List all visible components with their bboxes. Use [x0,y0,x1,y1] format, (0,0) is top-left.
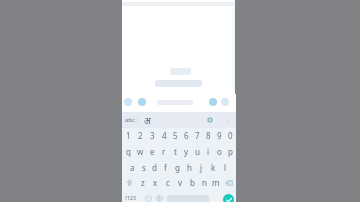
staticText: t [174,146,177,157]
staticText: c [166,177,170,188]
button[interactable]: o [214,143,225,159]
staticText: h [187,162,192,173]
button[interactable]: ?123 [125,195,136,202]
button[interactable]: u [192,143,203,159]
staticText: q [126,146,131,157]
staticText: a [130,162,135,173]
staticText: 3 [150,130,155,141]
staticText: p [228,146,233,157]
button[interactable]: i [203,143,214,159]
button[interactable]: 1 [122,128,134,143]
button[interactable]: Camera [138,98,146,106]
button[interactable]: 4 [158,128,170,143]
staticText: y [184,146,189,157]
staticText: 0 [228,130,233,141]
button[interactable]: j [195,159,207,175]
staticText: n [202,177,207,188]
button[interactable]: a [127,159,138,175]
staticText: l [224,162,227,173]
button[interactable]: Settings [206,116,214,124]
button[interactable]: Send [221,98,229,106]
staticText: ?123 [125,195,136,202]
button[interactable]: Hide keyboard [224,116,232,124]
button[interactable]: abc [122,112,137,128]
staticText: z [141,177,145,188]
button[interactable]: t [170,143,181,159]
staticText: abc [125,116,135,124]
staticText: s [142,162,146,173]
button[interactable]: 0 [225,128,236,143]
button[interactable]: Emoji [209,98,217,106]
button[interactable]: 6 [181,128,192,143]
button[interactable]: c [162,175,174,190]
staticText: i [207,146,210,157]
button[interactable]: f [160,159,171,175]
staticText: b [190,177,195,188]
button[interactable]: z [136,175,149,190]
button[interactable]: d [149,159,160,175]
staticText: e [150,146,155,157]
button[interactable]: Shift [122,175,136,190]
staticText: f [164,162,167,173]
staticText: w [137,146,144,157]
staticText: 4 [162,130,167,141]
button[interactable]: x [149,175,162,190]
button[interactable]: v [174,175,186,190]
staticText: o [217,146,222,157]
button[interactable]: Language [155,194,163,202]
button[interactable]: k [207,159,219,175]
button[interactable]: y [181,143,192,159]
staticText: 1 [126,130,131,141]
button[interactable]: Emoji [144,194,152,202]
button[interactable]: g [171,159,183,175]
staticText: x [153,177,158,188]
button[interactable]: 7 [192,128,203,143]
button[interactable]: l [219,159,231,175]
staticText: 9 [217,130,222,141]
staticText: अ [144,114,151,126]
staticText: u [195,146,200,157]
button[interactable]: Attach [124,98,132,106]
button[interactable]: s [138,159,149,175]
staticText: g [175,162,180,173]
button[interactable]: 2 [134,128,146,143]
staticText: m [212,177,220,188]
button[interactable]: 5 [170,128,181,143]
button[interactable]: m [210,175,222,190]
staticText: j [200,162,203,173]
button[interactable]: n [198,175,210,190]
button[interactable]: 9 [214,128,225,143]
button[interactable]: r [158,143,170,159]
staticText: d [152,162,157,173]
staticText: 8 [206,130,211,141]
staticText: 5 [173,130,178,141]
staticText: k [211,162,216,173]
button[interactable]: p [225,143,236,159]
button[interactable]: Enter [223,194,234,202]
button[interactable]: Backspace [222,175,236,190]
button[interactable]: w [134,143,146,159]
button[interactable]: b [186,175,198,190]
staticText: 6 [184,130,189,141]
button[interactable]: h [183,159,195,175]
staticText: 2 [138,130,143,141]
staticText: r [162,146,166,157]
button[interactable]: 3 [146,128,158,143]
button[interactable]: q [122,143,134,159]
staticText: 7 [195,130,200,141]
staticText: v [178,177,183,188]
button[interactable]: 8 [203,128,214,143]
button[interactable]: e [146,143,158,159]
